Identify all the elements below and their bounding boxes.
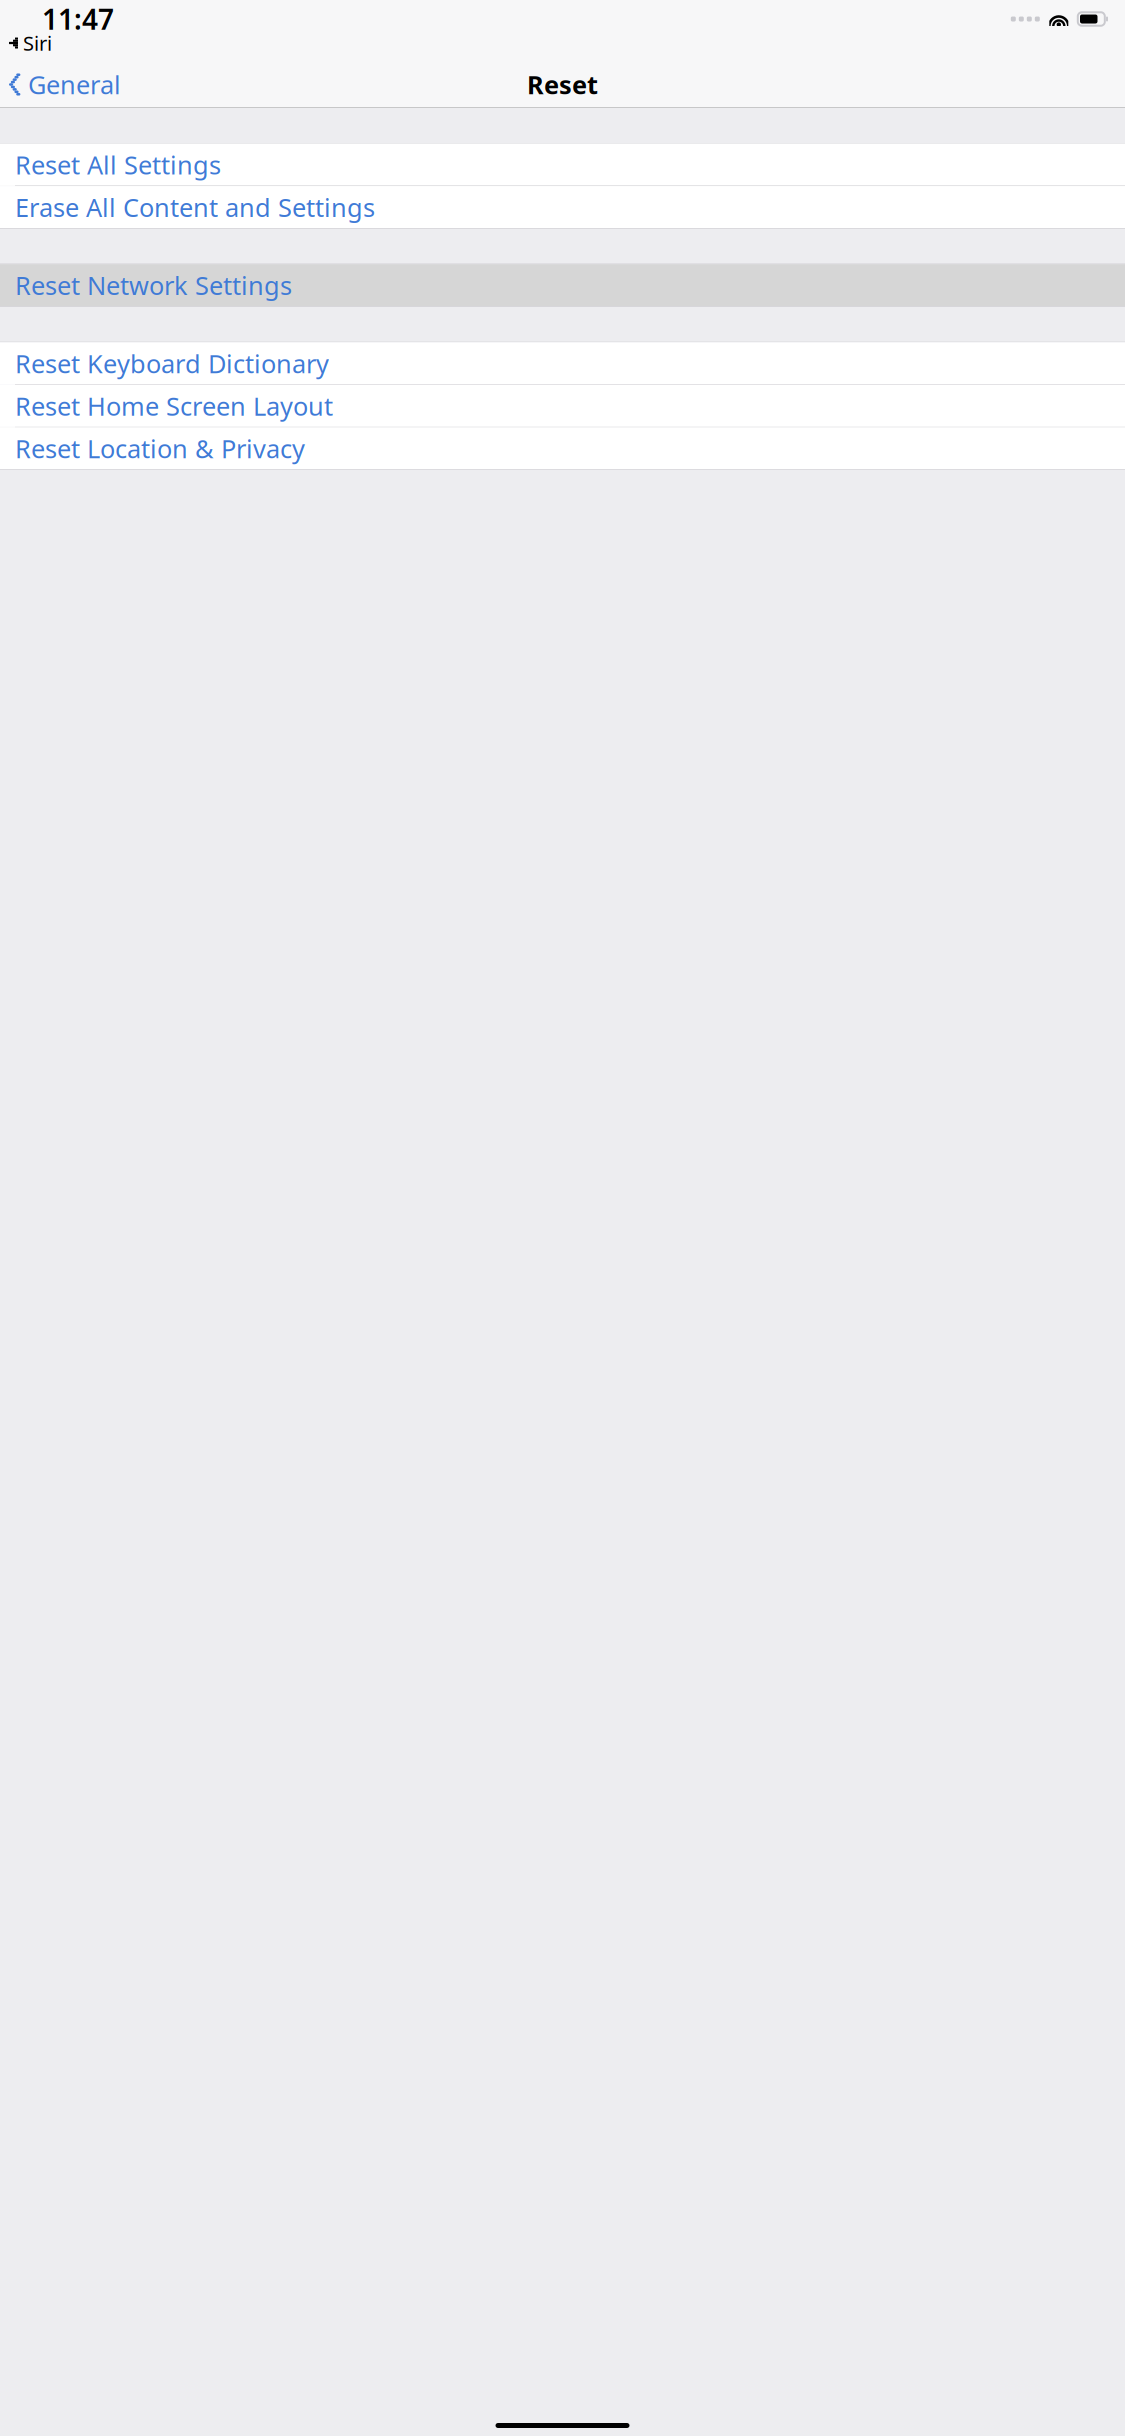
staticText: Reset Home Screen Layout	[15, 389, 333, 423]
staticText: Reset Network Settings	[15, 268, 292, 302]
staticText: 11:47	[42, 0, 114, 38]
button[interactable]: Reset Keyboard Dictionary	[0, 342, 1125, 384]
staticText: Erase All Content and Settings	[15, 190, 375, 224]
staticText: General	[28, 68, 121, 101]
button[interactable]: Reset Location & Privacy	[0, 427, 1125, 469]
button[interactable]: Reset Network Settings	[0, 264, 1125, 306]
button[interactable]: Erase All Content and Settings	[0, 186, 1125, 228]
button[interactable]: Reset All Settings	[0, 144, 1125, 186]
button[interactable]: Reset Home Screen Layout	[0, 385, 1125, 427]
staticText: Reset Location & Privacy	[15, 432, 305, 465]
staticText: Reset All Settings	[15, 148, 221, 181]
staticText: Reset	[527, 68, 598, 101]
staticText: Reset Keyboard Dictionary	[15, 346, 329, 380]
staticText: Siri	[23, 30, 52, 56]
button[interactable]: General	[0, 62, 121, 107]
